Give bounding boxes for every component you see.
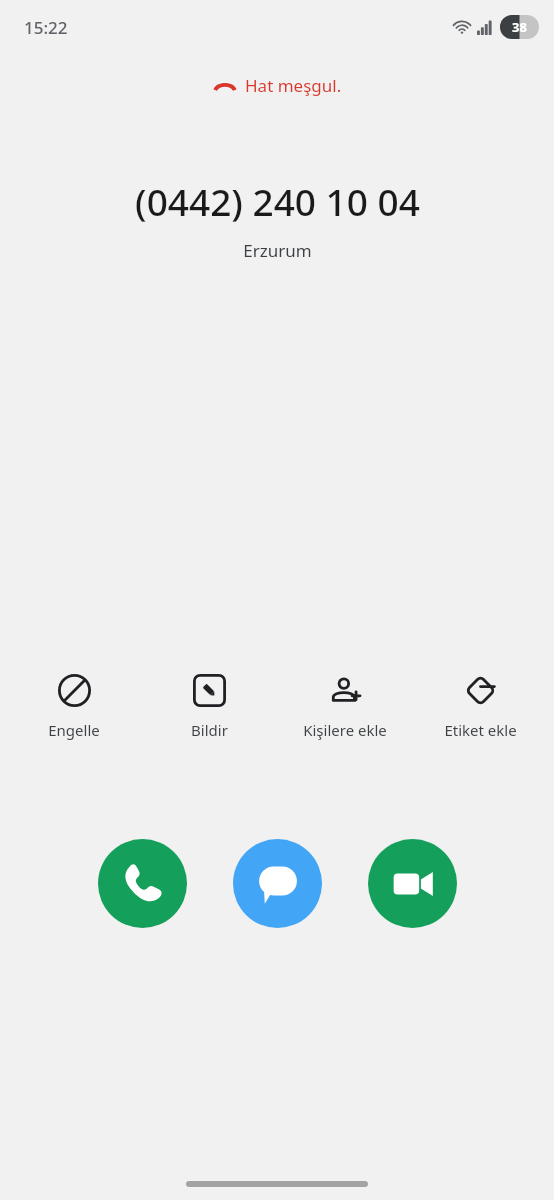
staticText: 38: [512, 18, 527, 36]
staticText: Erzurum: [243, 239, 312, 262]
staticText: Hat meşgul.: [245, 74, 342, 97]
button[interactable]: Message: [233, 839, 322, 928]
staticText: 15:22: [24, 16, 68, 39]
staticText: Kişilere ekle: [303, 720, 387, 740]
staticText: Bildir: [191, 720, 228, 740]
button[interactable]: Kişilere ekle: [281, 670, 409, 744]
staticText: Etiket ekle: [444, 720, 517, 740]
staticText: Engelle: [48, 720, 100, 740]
button[interactable]: Etiket ekle: [416, 670, 544, 744]
button[interactable]: Bildir: [145, 670, 273, 744]
button[interactable]: Engelle: [10, 670, 138, 744]
button[interactable]: Video call: [368, 839, 457, 928]
button[interactable]: Call: [98, 839, 187, 928]
staticText: (0442) 240 10 04: [135, 176, 420, 226]
